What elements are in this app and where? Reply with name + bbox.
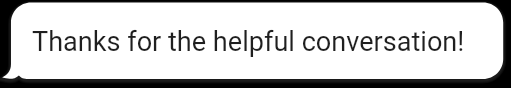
staticText: Thanks for the helpful conversation! — [32, 26, 465, 58]
button[interactable]: Thanks for the helpful conversation! — [0, 0, 511, 88]
